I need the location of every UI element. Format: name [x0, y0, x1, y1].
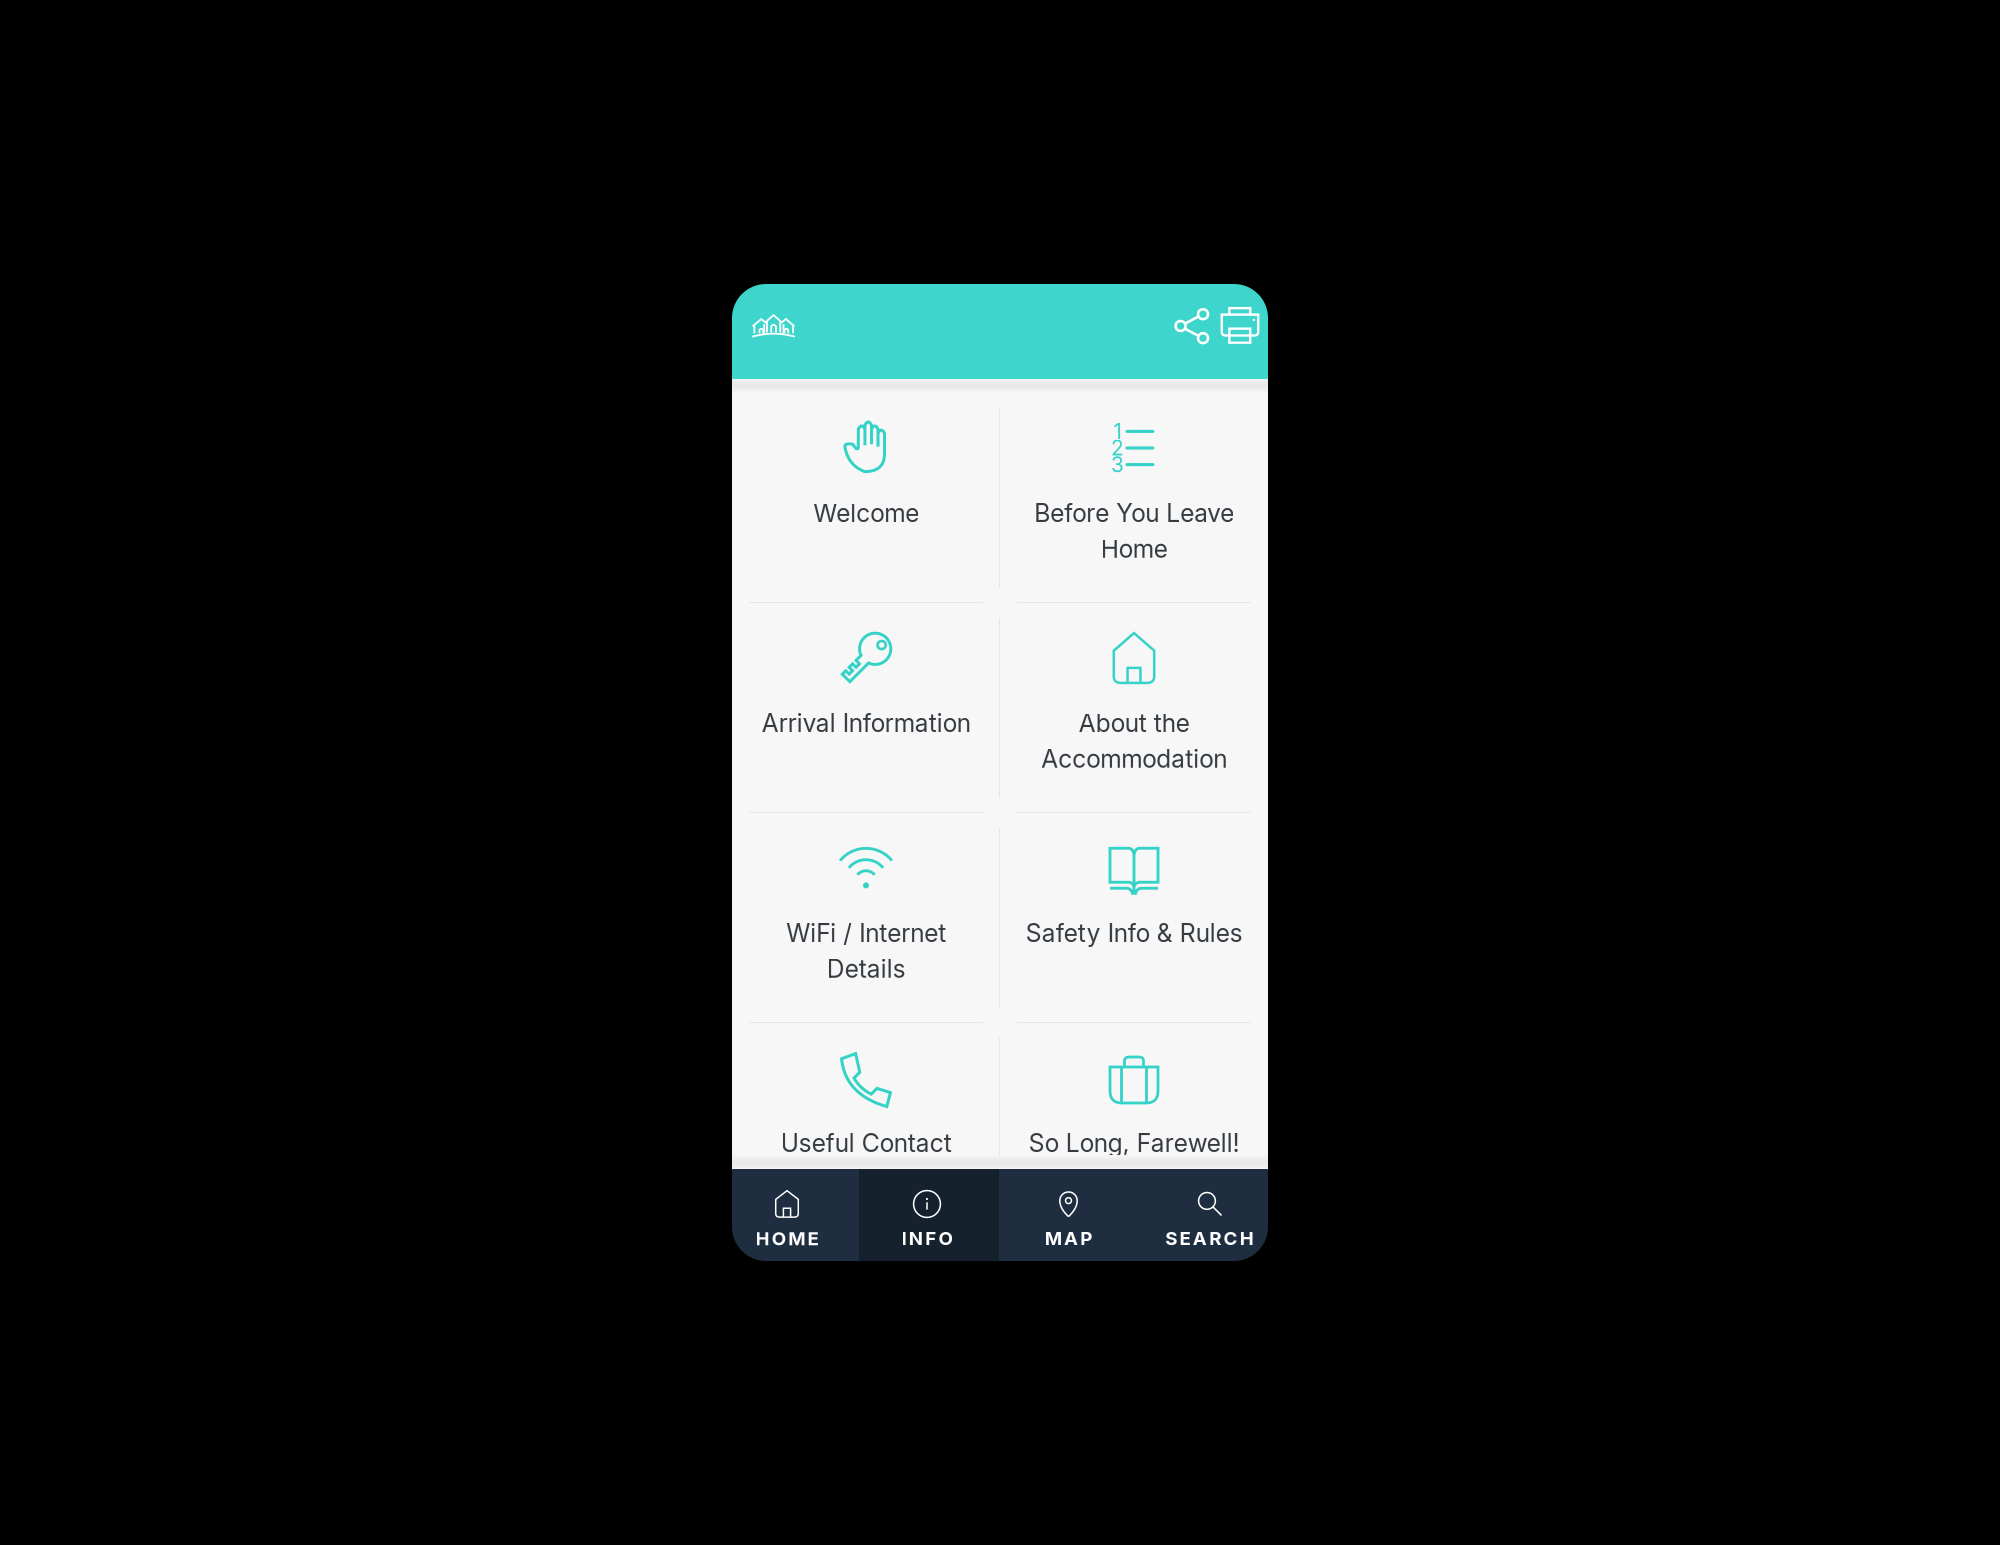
staticText: INFO	[902, 1227, 952, 1250]
staticText: Arrival Information	[761, 708, 970, 738]
staticText: 1	[1114, 419, 1122, 444]
button[interactable]: HOME	[732, 1169, 859, 1261]
button[interactable]: Welcome	[732, 393, 1000, 603]
button[interactable]: MAP	[999, 1169, 1133, 1261]
staticText: SEARCH	[1165, 1227, 1254, 1250]
button[interactable]: Home	[732, 302, 795, 350]
staticText: Welcome	[813, 498, 919, 528]
staticText: Before You Leave Home	[1034, 498, 1234, 564]
staticText: HOME	[756, 1227, 818, 1250]
button[interactable]: Share	[1168, 302, 1216, 350]
staticText: MAP	[1045, 1227, 1092, 1250]
button[interactable]: About the Accommodation	[1000, 603, 1268, 813]
button[interactable]: Useful Contact	[732, 1023, 1000, 1233]
button[interactable]: So Long, Farewell!	[1000, 1023, 1268, 1233]
button[interactable]: INFO	[859, 1169, 999, 1261]
staticText: Safety Info & Rules	[1025, 918, 1242, 948]
button[interactable]: Safety Info & Rules	[1000, 813, 1268, 1023]
button[interactable]: Print	[1216, 302, 1264, 350]
staticText: Useful Contact	[780, 1128, 951, 1158]
button[interactable]: SEARCH	[1133, 1169, 1268, 1261]
staticText: So Long, Farewell!	[1028, 1128, 1239, 1158]
staticText: 2	[1111, 435, 1124, 460]
staticText: About the Accommodation	[1041, 708, 1227, 774]
staticText: 3	[1111, 452, 1124, 477]
button[interactable]: Arrival Information	[732, 603, 1000, 813]
staticText: WiFi / Internet Details	[786, 918, 946, 984]
button[interactable]: 1	[1000, 393, 1268, 603]
button[interactable]: WiFi / Internet Details	[732, 813, 1000, 1023]
